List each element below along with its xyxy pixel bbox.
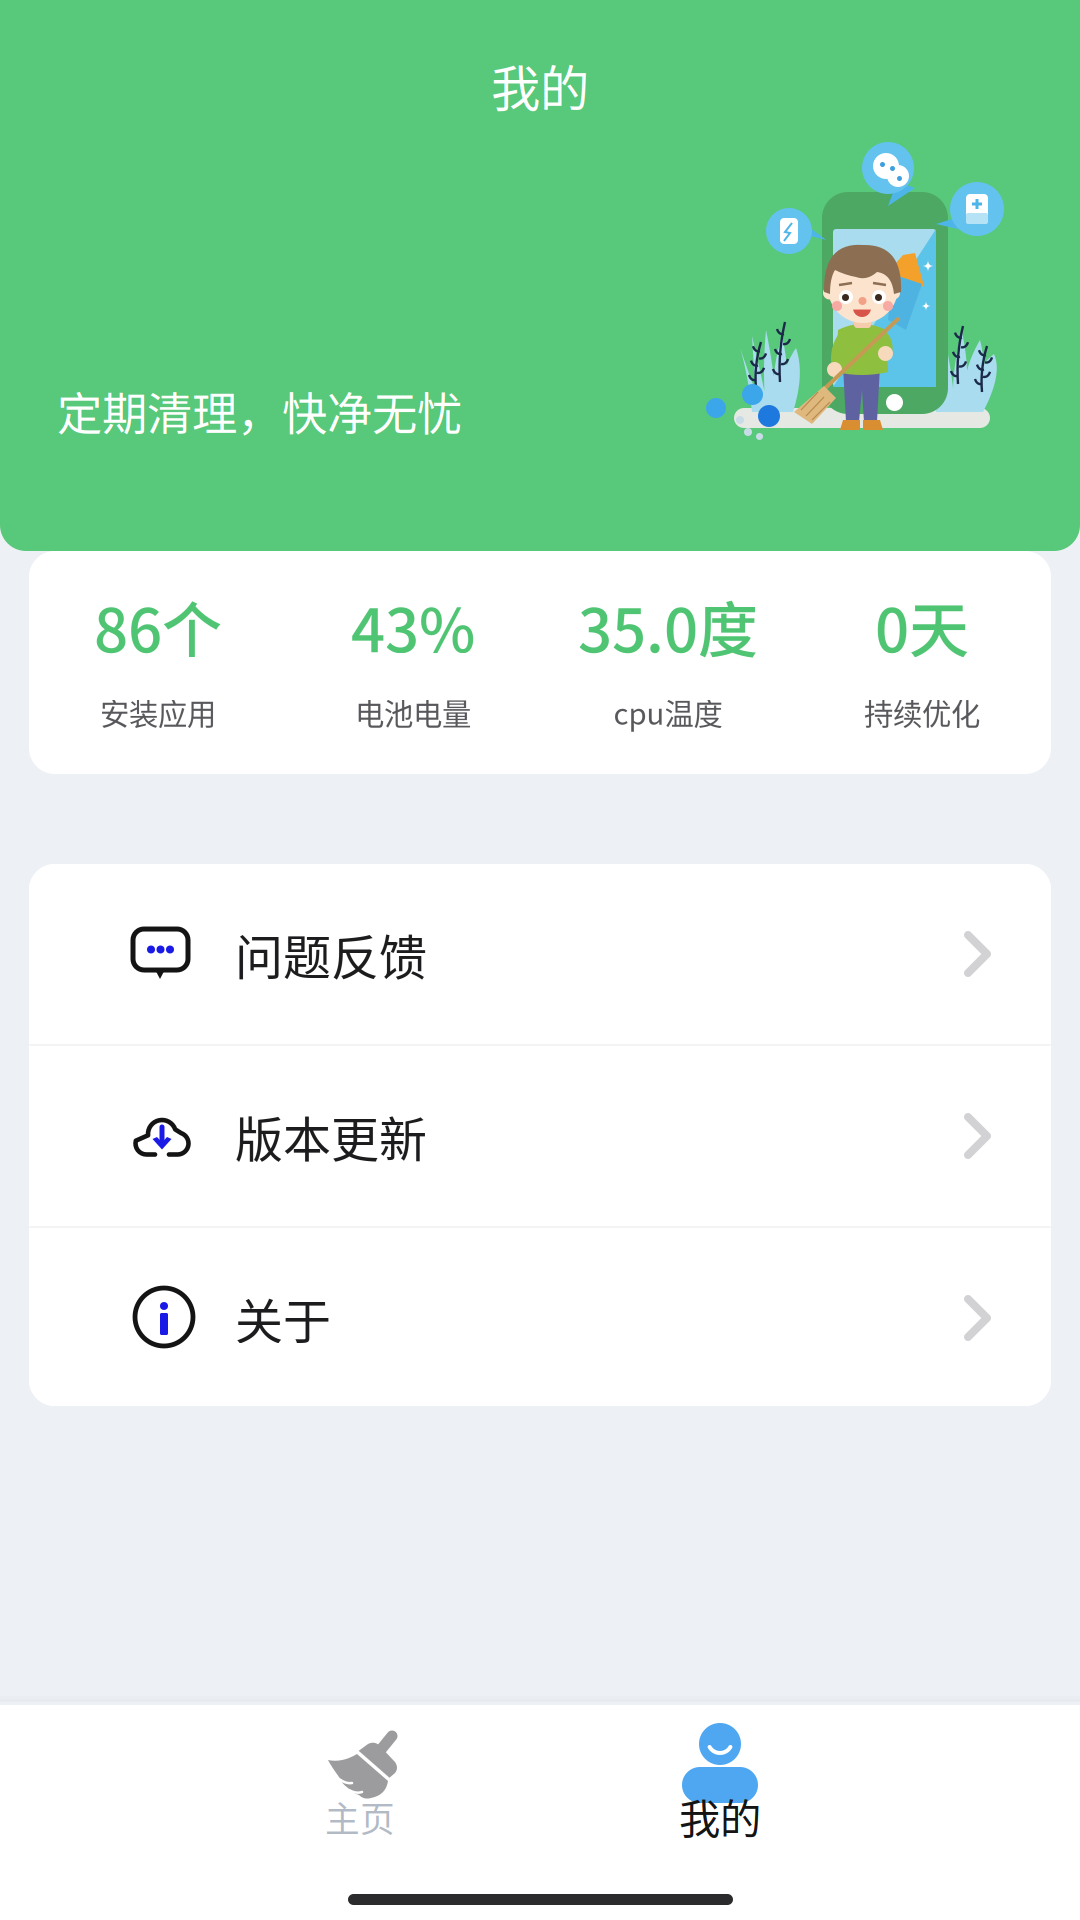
staticText: 主页 [325, 1792, 395, 1842]
staticText: 关于 [235, 1283, 331, 1353]
button[interactable]: 版本更新 [29, 1046, 1051, 1226]
staticText: 我的 [679, 1786, 761, 1846]
button[interactable]: 关于 [29, 1228, 1051, 1408]
button[interactable]: 主页 [230, 1705, 490, 1855]
staticText: 版本更新 [235, 1101, 427, 1171]
staticText: 43% [351, 583, 475, 669]
button[interactable]: 我的 [590, 1705, 850, 1855]
staticText: 35.0度 [578, 583, 758, 669]
staticText: 0天 [875, 583, 969, 669]
staticText: 电池电量 [355, 691, 471, 733]
staticText: cpu温度 [613, 691, 722, 733]
staticText: 问题反馈 [235, 919, 427, 989]
staticText: 86个 [94, 583, 222, 669]
staticText: 定期清理，快净无忧 [57, 378, 462, 444]
staticText: 我的 [491, 49, 589, 121]
staticText: 安装应用 [100, 691, 216, 733]
button[interactable]: 问题反馈 [29, 864, 1051, 1044]
staticText: 持续优化 [864, 691, 980, 733]
